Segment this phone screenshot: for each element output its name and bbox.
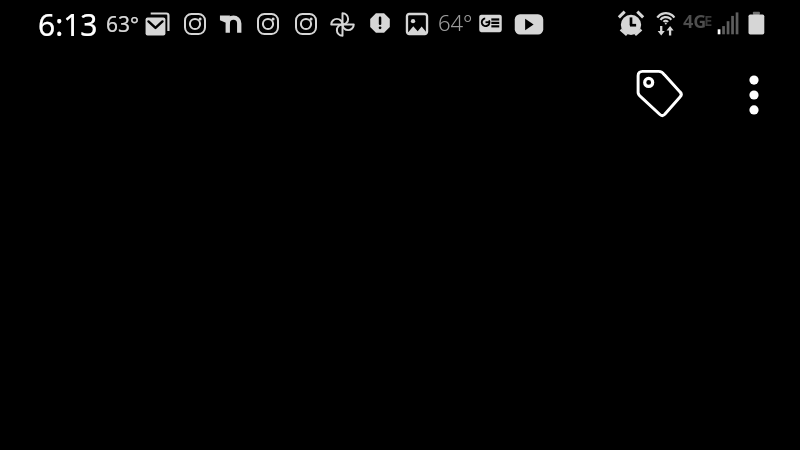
staticText: 64° bbox=[438, 7, 473, 37]
staticText: 6:13 bbox=[38, 4, 98, 45]
button[interactable]: More options bbox=[730, 71, 778, 119]
button[interactable]: Labels bbox=[623, 57, 695, 129]
staticText: 4G bbox=[683, 9, 707, 34]
staticText: 63° bbox=[106, 10, 140, 39]
staticText: E bbox=[704, 10, 713, 30]
